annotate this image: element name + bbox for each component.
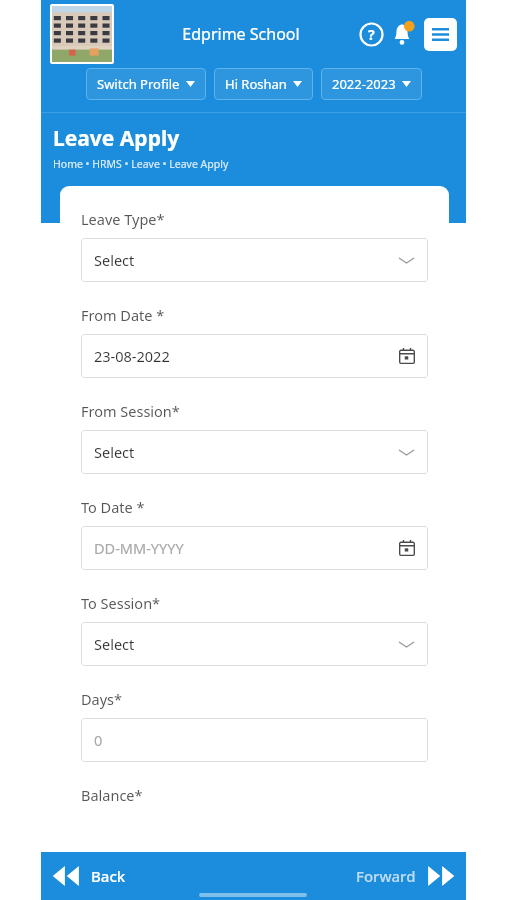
staticText: Hi Roshan: [225, 75, 287, 93]
button[interactable]: Back: [41, 858, 140, 894]
button[interactable]: 0: [81, 718, 428, 762]
staticText: From Session*: [81, 401, 180, 421]
staticText: 23-08-2022: [94, 346, 170, 366]
staticText: Switch Profile: [97, 75, 180, 93]
staticText: To Session*: [81, 593, 161, 613]
button[interactable]: Select: [81, 238, 428, 282]
staticText: Home • HRMS • Leave • Leave Apply: [53, 157, 229, 171]
button[interactable]: Help: [356, 19, 386, 49]
staticText: Forward: [356, 866, 416, 886]
staticText: Select: [94, 250, 135, 270]
button[interactable]: Menu: [424, 18, 457, 51]
staticText: From Date *: [81, 305, 165, 325]
button[interactable]: Forward: [342, 858, 466, 894]
staticText: Leave Type*: [81, 209, 165, 229]
staticText: To Date *: [81, 497, 145, 517]
button[interactable]: Switch Profile: [86, 68, 206, 100]
staticText: Edprime School: [126, 23, 356, 45]
button[interactable]: Notifications: [386, 18, 418, 50]
staticText: Days*: [81, 689, 123, 709]
button[interactable]: Select: [81, 430, 428, 474]
button[interactable]: DD-MM-YYYY: [81, 526, 428, 570]
button[interactable]: Hi Roshan: [214, 68, 313, 100]
staticText: Balance*: [81, 785, 143, 805]
staticText: 0: [94, 730, 103, 750]
staticText: Select: [94, 634, 135, 654]
staticText: ?: [368, 25, 375, 44]
staticText: DD-MM-YYYY: [94, 538, 184, 558]
button[interactable]: 23-08-2022: [81, 334, 428, 378]
staticText: 2022-2023: [332, 75, 396, 93]
staticText: Select: [94, 442, 135, 462]
button[interactable]: Select: [81, 622, 428, 666]
staticText: Leave Apply: [53, 124, 180, 153]
button[interactable]: 2022-2023: [321, 68, 422, 100]
staticText: Back: [91, 866, 126, 886]
